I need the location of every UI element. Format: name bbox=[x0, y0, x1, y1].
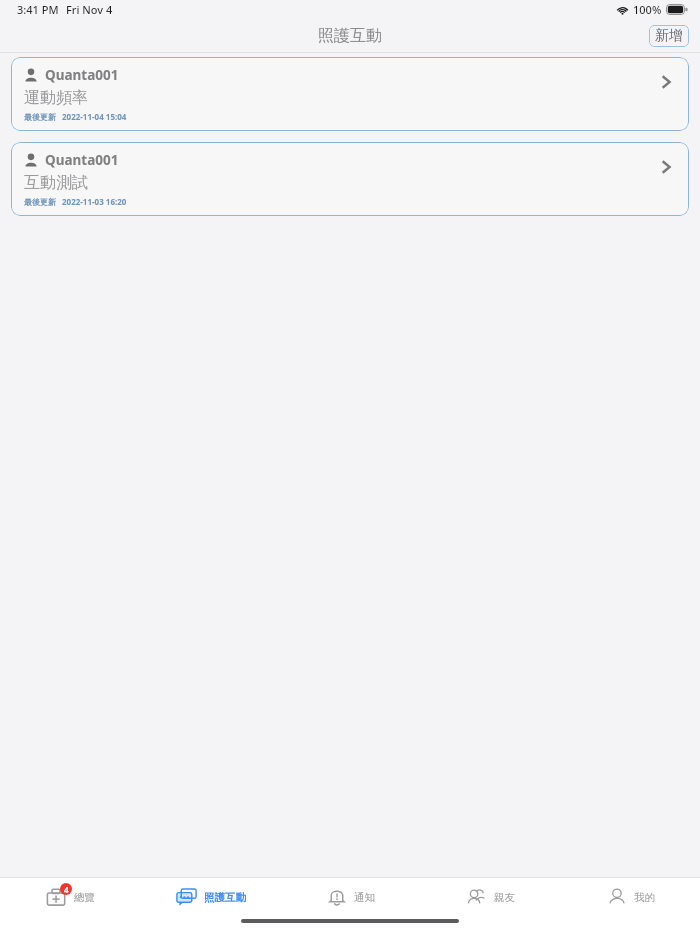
button[interactable]: 4 bbox=[0, 878, 140, 916]
staticText: Quanta001 bbox=[45, 66, 119, 84]
staticText: 照護互動 bbox=[204, 891, 246, 904]
other: Open detail bbox=[660, 158, 672, 176]
staticText: 總覽 bbox=[74, 891, 95, 904]
staticText: 2022-11-04 15:04 bbox=[62, 111, 127, 122]
staticText: 照護互動 bbox=[318, 26, 382, 46]
button[interactable]: 我的 bbox=[560, 878, 700, 916]
staticText: 我的 bbox=[634, 891, 655, 904]
other: Open detail bbox=[660, 73, 672, 91]
button[interactable]: 親友 bbox=[420, 878, 560, 916]
button[interactable]: Quanta001 bbox=[11, 142, 689, 216]
button[interactable]: 新增 bbox=[649, 25, 689, 47]
staticText: 最後更新 bbox=[24, 112, 56, 122]
staticText: 互動測試 bbox=[24, 173, 88, 193]
staticText: 運動頻率 bbox=[24, 88, 88, 108]
staticText: Fri Nov 4 bbox=[66, 2, 113, 17]
staticText: 100% bbox=[633, 2, 662, 17]
staticText: 新增 bbox=[655, 27, 683, 45]
button[interactable]: 通知 bbox=[280, 878, 420, 916]
staticText: 4 bbox=[64, 884, 69, 895]
staticText: 通知 bbox=[354, 891, 375, 904]
button[interactable]: 照護互動 bbox=[140, 878, 280, 916]
staticText: Quanta001 bbox=[45, 151, 119, 169]
staticText: 2022-11-03 16:20 bbox=[62, 196, 127, 207]
staticText: 3:41 PM bbox=[17, 2, 59, 17]
staticText: 最後更新 bbox=[24, 197, 56, 207]
button[interactable]: Quanta001 bbox=[11, 57, 689, 131]
staticText: 親友 bbox=[494, 891, 515, 904]
